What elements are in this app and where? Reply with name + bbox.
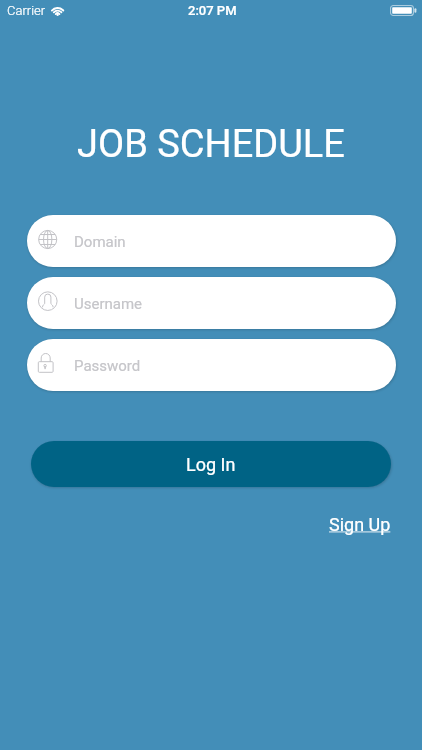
staticText: Log In xyxy=(186,454,236,475)
other: Battery full xyxy=(390,5,417,16)
button[interactable]: Sign Up xyxy=(329,514,391,535)
other: Wi-Fi signal xyxy=(50,5,66,16)
button[interactable]: Domain xyxy=(27,215,396,267)
staticText: JOB SCHEDULE xyxy=(0,122,422,167)
button[interactable]: Password xyxy=(27,339,396,391)
staticText: 2:07 PM xyxy=(188,3,237,18)
button[interactable]: Log In xyxy=(31,441,391,487)
staticText: Carrier xyxy=(7,3,46,18)
staticText: Sign Up xyxy=(329,514,391,535)
staticText: Domain xyxy=(74,233,126,251)
button[interactable]: Username xyxy=(27,277,396,329)
staticText: Username xyxy=(74,295,143,313)
staticText: Password xyxy=(74,357,141,375)
